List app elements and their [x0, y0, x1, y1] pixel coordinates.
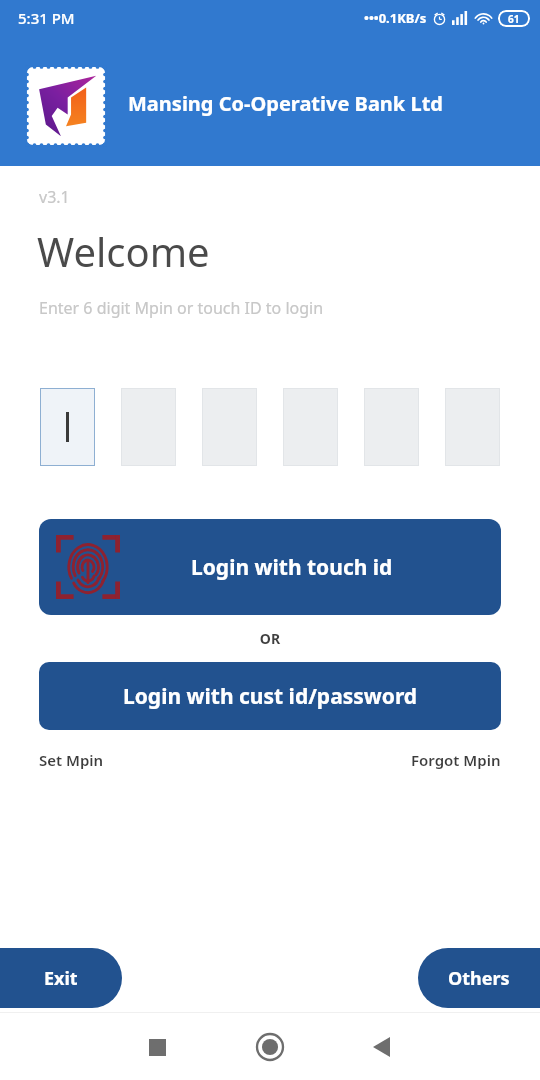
staticText: Login with touch id	[191, 553, 393, 582]
button[interactable]: Forgot Mpin	[411, 750, 501, 770]
staticText: •••0.1KB/s	[364, 9, 427, 27]
staticText: 5:31 PM	[18, 8, 75, 28]
button[interactable]	[40, 388, 95, 466]
button[interactable]: Login with touch id	[39, 519, 501, 615]
staticText: Enter 6 digit Mpin or touch ID to login	[39, 297, 324, 319]
staticText: Mansing Co-Operative Bank Ltd	[128, 90, 443, 117]
staticText: Welcome	[37, 224, 210, 278]
button[interactable]: Exit	[0, 948, 122, 1008]
staticText: Others	[448, 966, 510, 991]
button[interactable]: Back	[359, 1025, 403, 1069]
staticText: OR	[0, 629, 540, 648]
button[interactable]: Home	[248, 1025, 292, 1069]
button[interactable]: Set Mpin	[39, 750, 104, 770]
staticText: Login with cust id/password	[123, 682, 418, 711]
staticText: 61	[508, 12, 520, 26]
staticText: Exit	[44, 966, 78, 991]
button[interactable]: Recent apps	[135, 1025, 179, 1069]
staticText: v3.1	[39, 186, 70, 208]
button[interactable]: Login with cust id/password	[39, 662, 501, 730]
button[interactable]: Others	[418, 948, 540, 1008]
